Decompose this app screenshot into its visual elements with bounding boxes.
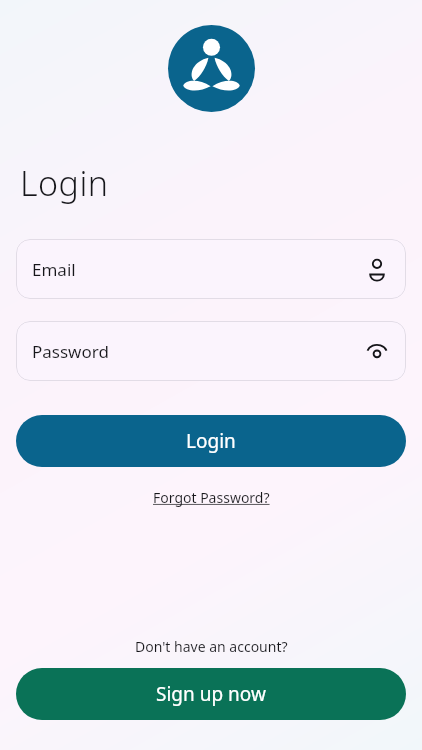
staticText: Email <box>32 258 76 281</box>
staticText: Don't have an account? <box>135 637 288 656</box>
button[interactable]: Forgot Password? <box>145 485 278 510</box>
other: Email account <box>364 256 390 282</box>
staticText: Password <box>32 340 109 363</box>
staticText: Forgot Password? <box>153 488 270 507</box>
button[interactable]: Email <box>16 239 406 299</box>
button[interactable]: Sign up now <box>16 668 406 720</box>
staticText: Login <box>186 428 236 454</box>
button[interactable]: Password <box>16 321 406 381</box>
button[interactable]: Login <box>16 415 406 467</box>
staticText: Login <box>20 160 109 206</box>
staticText: Sign up now <box>156 681 266 707</box>
other: Show password <box>364 338 390 364</box>
